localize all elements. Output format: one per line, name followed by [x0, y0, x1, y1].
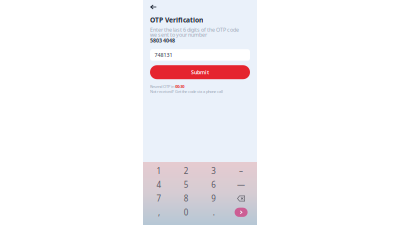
staticText: — — [237, 179, 245, 190]
button[interactable]: Hyphen — [227, 164, 255, 178]
staticText: Enter the last 6 digits of the OTP code — [150, 26, 239, 33]
button[interactable]: 1 — [145, 164, 173, 178]
staticText: , — [158, 207, 160, 218]
staticText: – — [239, 166, 243, 176]
staticText: 3 — [211, 166, 216, 176]
button[interactable]: Delete — [227, 192, 255, 205]
button[interactable]: Back — [150, 2, 163, 11]
staticText: 00:30 — [175, 84, 184, 89]
staticText: we sent to your number — [150, 31, 207, 38]
button[interactable]: Not received? Get the code via a phone c… — [150, 89, 250, 94]
button[interactable]: 2 — [173, 164, 200, 178]
button[interactable]: 0 — [173, 205, 200, 219]
button[interactable]: 6 — [200, 178, 227, 192]
staticText: Resend OTP in — [150, 84, 174, 89]
button[interactable]: 5 — [173, 178, 200, 192]
staticText: 8 — [184, 193, 189, 204]
staticText: 2 — [184, 166, 189, 176]
staticText: 6 — [211, 179, 216, 190]
button[interactable]: 9 — [200, 192, 227, 205]
staticText: 1 — [156, 166, 161, 176]
staticText: 5803 4048 — [150, 37, 175, 44]
button[interactable]: Submit — [150, 65, 250, 79]
staticText: OTP Verification — [150, 16, 203, 24]
button[interactable]: Dash — [227, 178, 255, 192]
staticText: 5 — [184, 179, 189, 190]
staticText: 0 — [184, 207, 189, 218]
staticText: 4 — [156, 179, 161, 190]
button[interactable]: Go — [227, 205, 255, 219]
button[interactable]: 3 — [200, 164, 227, 178]
button[interactable]: 8 — [173, 192, 200, 205]
button[interactable]: , — [145, 205, 173, 219]
staticText: . — [213, 207, 215, 218]
button[interactable]: . — [200, 205, 227, 219]
staticText: Submit — [191, 69, 209, 76]
staticText: 748131 — [154, 51, 172, 58]
button[interactable]: 4 — [145, 178, 173, 192]
staticText: 7 — [156, 193, 161, 204]
button[interactable]: 7 — [145, 192, 173, 205]
staticText: Not received? Get the code via a phone c… — [150, 89, 223, 94]
staticText: 9 — [211, 193, 216, 204]
